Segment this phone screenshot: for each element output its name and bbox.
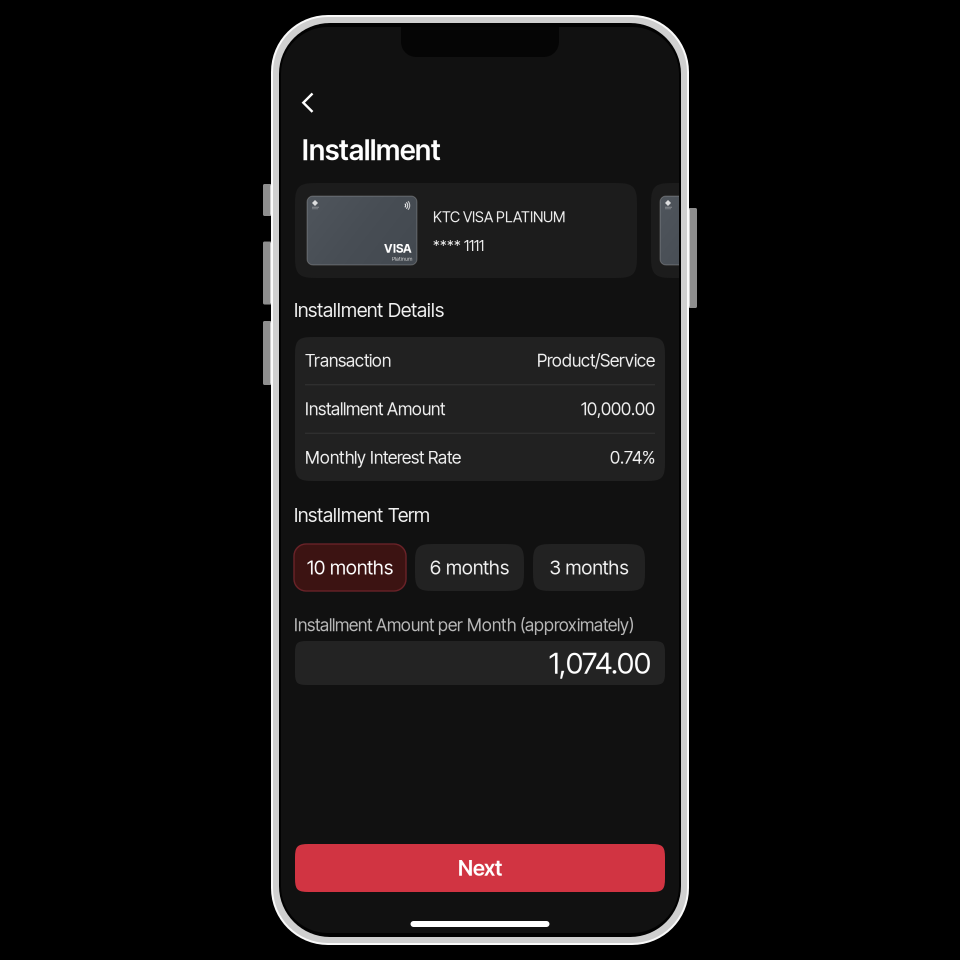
staticText: Installment Amount per Month (approximat… (294, 614, 634, 635)
staticText: KTC VISA PLATINUM (433, 208, 565, 226)
staticText: Monthly Interest Rate (305, 447, 461, 468)
staticText: Installment (302, 133, 441, 167)
staticText: Platinum (392, 255, 412, 262)
staticText: 0.74% (610, 447, 655, 468)
button[interactable]: Back (290, 88, 326, 118)
staticText: Transaction (305, 350, 391, 371)
staticText: 10 months (307, 556, 393, 579)
staticText: 6 months (430, 556, 509, 579)
staticText: 10,000.00 (581, 398, 655, 419)
staticText: 1,074.00 (549, 645, 651, 681)
button[interactable]: Next (295, 844, 665, 892)
button[interactable]: 10 months (294, 544, 406, 591)
button[interactable]: 3 months (533, 544, 645, 591)
button[interactable]: 6 months (415, 544, 524, 591)
staticText: Installment Details (294, 298, 444, 322)
staticText: Installment Amount (305, 398, 445, 419)
staticText: **** 1111 (433, 237, 484, 254)
staticText: Product/Service (537, 350, 655, 371)
staticText: 3 months (549, 556, 628, 579)
staticText: Installment Term (294, 503, 430, 527)
button[interactable]: VISA (295, 183, 637, 278)
staticText: Next (458, 855, 502, 881)
staticText: VISA (384, 241, 412, 255)
